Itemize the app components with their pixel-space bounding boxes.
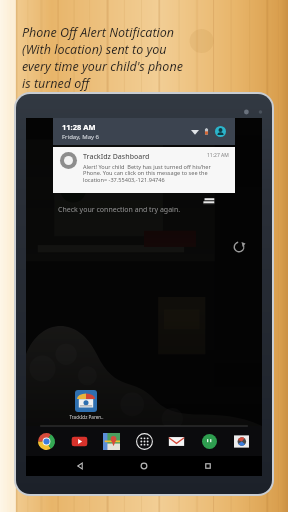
button[interactable]: Home [134,456,154,476]
button[interactable]: User profile [215,126,226,137]
staticText: TrackIdz Dashboard [83,152,207,162]
staticText: Phone Off Alert Notification [22,24,175,41]
button[interactable]: Maps [103,433,120,450]
staticText: Check your connection and try again. [58,205,181,215]
button[interactable]: Camera [233,433,250,450]
staticText: is turned off [22,75,90,92]
staticText: Friday, May 6 [62,133,100,141]
staticText: TrackIdz Paren.. [69,414,104,420]
button[interactable]: Recents [198,456,218,476]
button[interactable]: Back [70,456,90,476]
staticText: Alert! Your child Betty has just turned … [83,163,229,184]
button[interactable]: Hangouts [201,433,218,450]
staticText: 11:27 AM [207,152,229,159]
staticText: every time your child's phone [22,58,183,75]
button[interactable]: 11:28 AM [53,118,235,145]
button[interactable]: YouTube [71,433,88,450]
button[interactable]: Chrome [38,433,55,450]
button[interactable]: All apps [136,433,153,450]
button[interactable]: TrackIdz Paren.. [63,390,109,420]
staticText: (With location) sent to you [22,41,167,58]
button[interactable]: Gmail [168,433,185,450]
button[interactable]: Reload [232,240,246,254]
button[interactable]: TrackIdz Dashboard [53,147,235,193]
staticText: 11:28 AM [62,122,96,132]
